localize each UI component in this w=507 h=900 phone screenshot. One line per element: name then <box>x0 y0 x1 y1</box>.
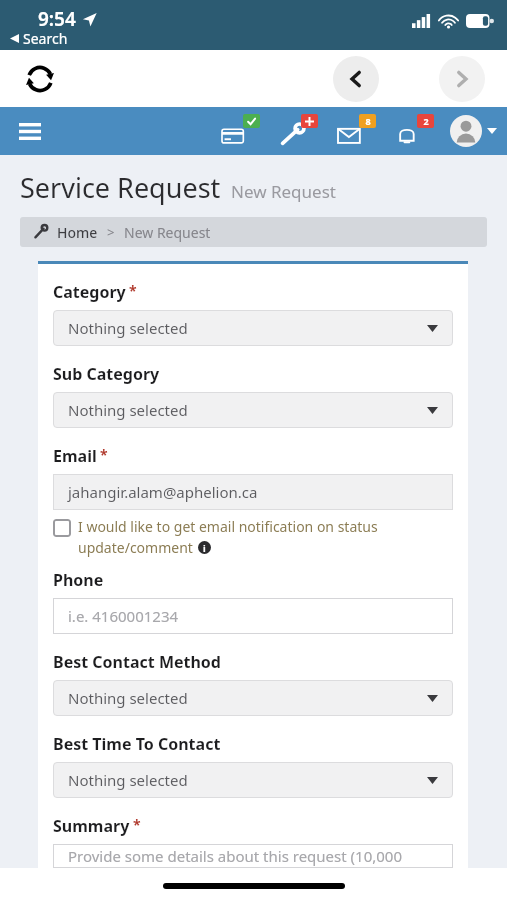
staticText: 9:54 <box>38 6 76 32</box>
button[interactable]: Back <box>333 56 379 102</box>
button[interactable]: Provide some details about this request … <box>53 844 453 868</box>
staticText: 8 <box>365 115 371 127</box>
staticText: * <box>129 281 137 300</box>
staticText: Email <box>53 445 97 467</box>
button[interactable]: Nothing selected <box>53 310 453 346</box>
staticText: Nothing selected <box>68 400 427 420</box>
staticText: Search <box>23 29 68 48</box>
staticText: i <box>203 542 206 554</box>
staticText: * <box>100 445 108 464</box>
button[interactable]: Nothing selected <box>53 762 453 798</box>
staticText: Sub Category <box>53 363 160 385</box>
staticText: Summary <box>53 815 130 837</box>
staticText: 2 <box>423 115 429 127</box>
button[interactable]: Nothing selected <box>53 680 453 716</box>
button[interactable]: Reload <box>20 59 60 99</box>
staticText: New Request <box>231 180 336 203</box>
staticText: i.e. 4160001234 <box>68 606 179 626</box>
staticText: Best Time To Contact <box>53 733 221 755</box>
button[interactable]: Account <box>450 115 497 147</box>
staticText: * <box>133 815 141 834</box>
button[interactable]: Messages <box>338 114 376 148</box>
staticText: Category <box>53 281 126 303</box>
staticText: Best Contact Method <box>53 651 221 673</box>
button[interactable]: Notifications <box>396 114 434 148</box>
staticText: New Request <box>124 223 211 242</box>
staticText: Service Request <box>20 169 221 206</box>
button[interactable]: jahangir.alam@aphelion.ca <box>53 474 453 510</box>
staticText: Phone <box>53 569 104 591</box>
button[interactable]: Payments <box>222 114 260 148</box>
staticText: Provide some details about this request … <box>68 846 402 866</box>
staticText: Nothing selected <box>68 688 427 708</box>
staticText: Nothing selected <box>68 318 427 338</box>
button[interactable]: Home <box>57 223 98 242</box>
staticText: I would like to get email notification o… <box>78 517 378 536</box>
button[interactable]: New request <box>280 114 318 148</box>
staticText: update/comment <box>78 538 193 557</box>
button[interactable]: Nothing selected <box>53 392 453 428</box>
button[interactable]: Forward <box>439 56 485 102</box>
staticText: > <box>107 223 115 241</box>
staticText: Nothing selected <box>68 770 427 790</box>
button[interactable]: I would like to get email notification o… <box>53 517 453 557</box>
button[interactable]: Menu <box>12 113 48 149</box>
staticText: jahangir.alam@aphelion.ca <box>68 482 258 502</box>
button[interactable]: i.e. 4160001234 <box>53 598 453 634</box>
